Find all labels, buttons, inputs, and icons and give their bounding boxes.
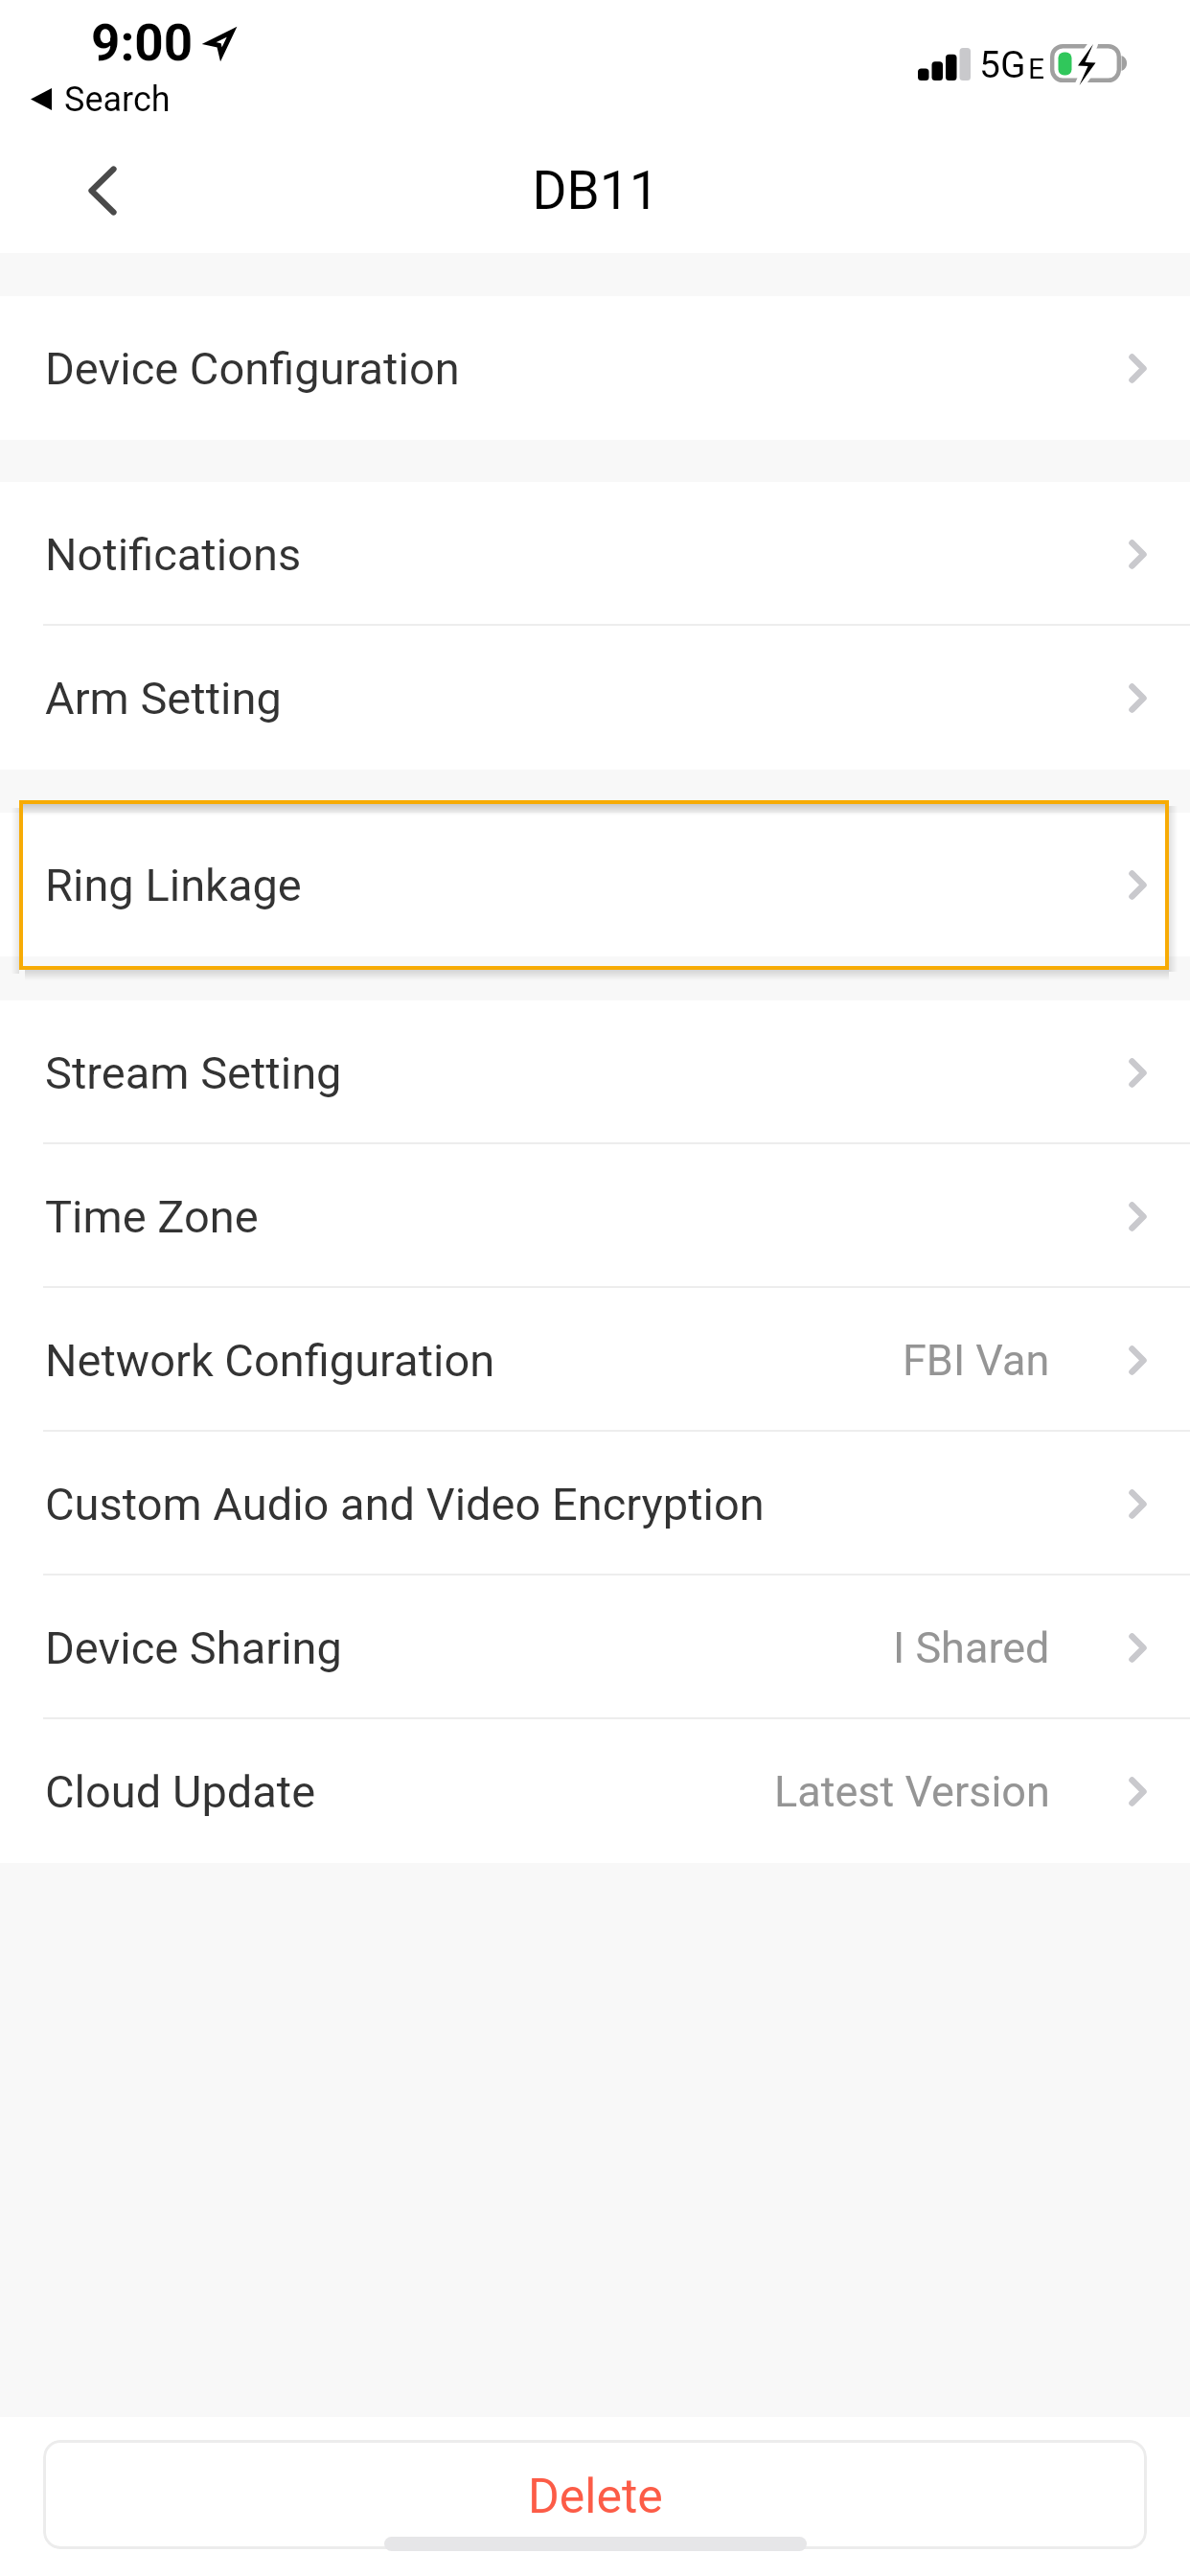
staticText: Cloud Update xyxy=(45,1765,316,1818)
button[interactable]: Device Configuration xyxy=(0,296,1190,440)
button[interactable]: Cloud Update xyxy=(0,1719,1190,1863)
button[interactable]: Time Zone xyxy=(0,1144,1190,1288)
button[interactable]: Network Configuration xyxy=(0,1288,1190,1432)
staticText: FBI Van xyxy=(903,1335,1050,1386)
staticText: Custom Audio and Video Encryption xyxy=(45,1478,765,1530)
staticText: Device Sharing xyxy=(45,1621,342,1674)
staticText: Device Configuration xyxy=(45,342,460,395)
staticText: 9:00 xyxy=(91,13,194,73)
staticText: I Shared xyxy=(893,1622,1050,1673)
button[interactable]: Notifications xyxy=(0,482,1190,626)
staticText: Stream Setting xyxy=(45,1046,342,1099)
staticText: Time Zone xyxy=(45,1190,259,1243)
button[interactable]: Ring Linkage xyxy=(0,813,1190,956)
staticText: DB11 xyxy=(532,160,659,221)
staticText: Search xyxy=(64,80,171,120)
staticText: Network Configuration xyxy=(45,1334,495,1387)
staticText: E xyxy=(1028,52,1045,85)
button[interactable]: Delete xyxy=(43,2440,1147,2549)
button[interactable]: Stream Setting xyxy=(0,1000,1190,1144)
staticText: Latest Version xyxy=(774,1766,1050,1817)
staticText: 5G xyxy=(979,43,1026,87)
staticText: Delete xyxy=(528,2469,663,2525)
staticText: Ring Linkage xyxy=(45,859,302,911)
button[interactable]: Arm Setting xyxy=(0,626,1190,770)
button[interactable]: Back xyxy=(61,149,144,232)
button[interactable]: Custom Audio and Video Encryption xyxy=(0,1432,1190,1575)
staticText: Notifications xyxy=(45,528,302,581)
staticText: Arm Setting xyxy=(45,672,282,724)
button[interactable]: Device Sharing xyxy=(0,1575,1190,1719)
